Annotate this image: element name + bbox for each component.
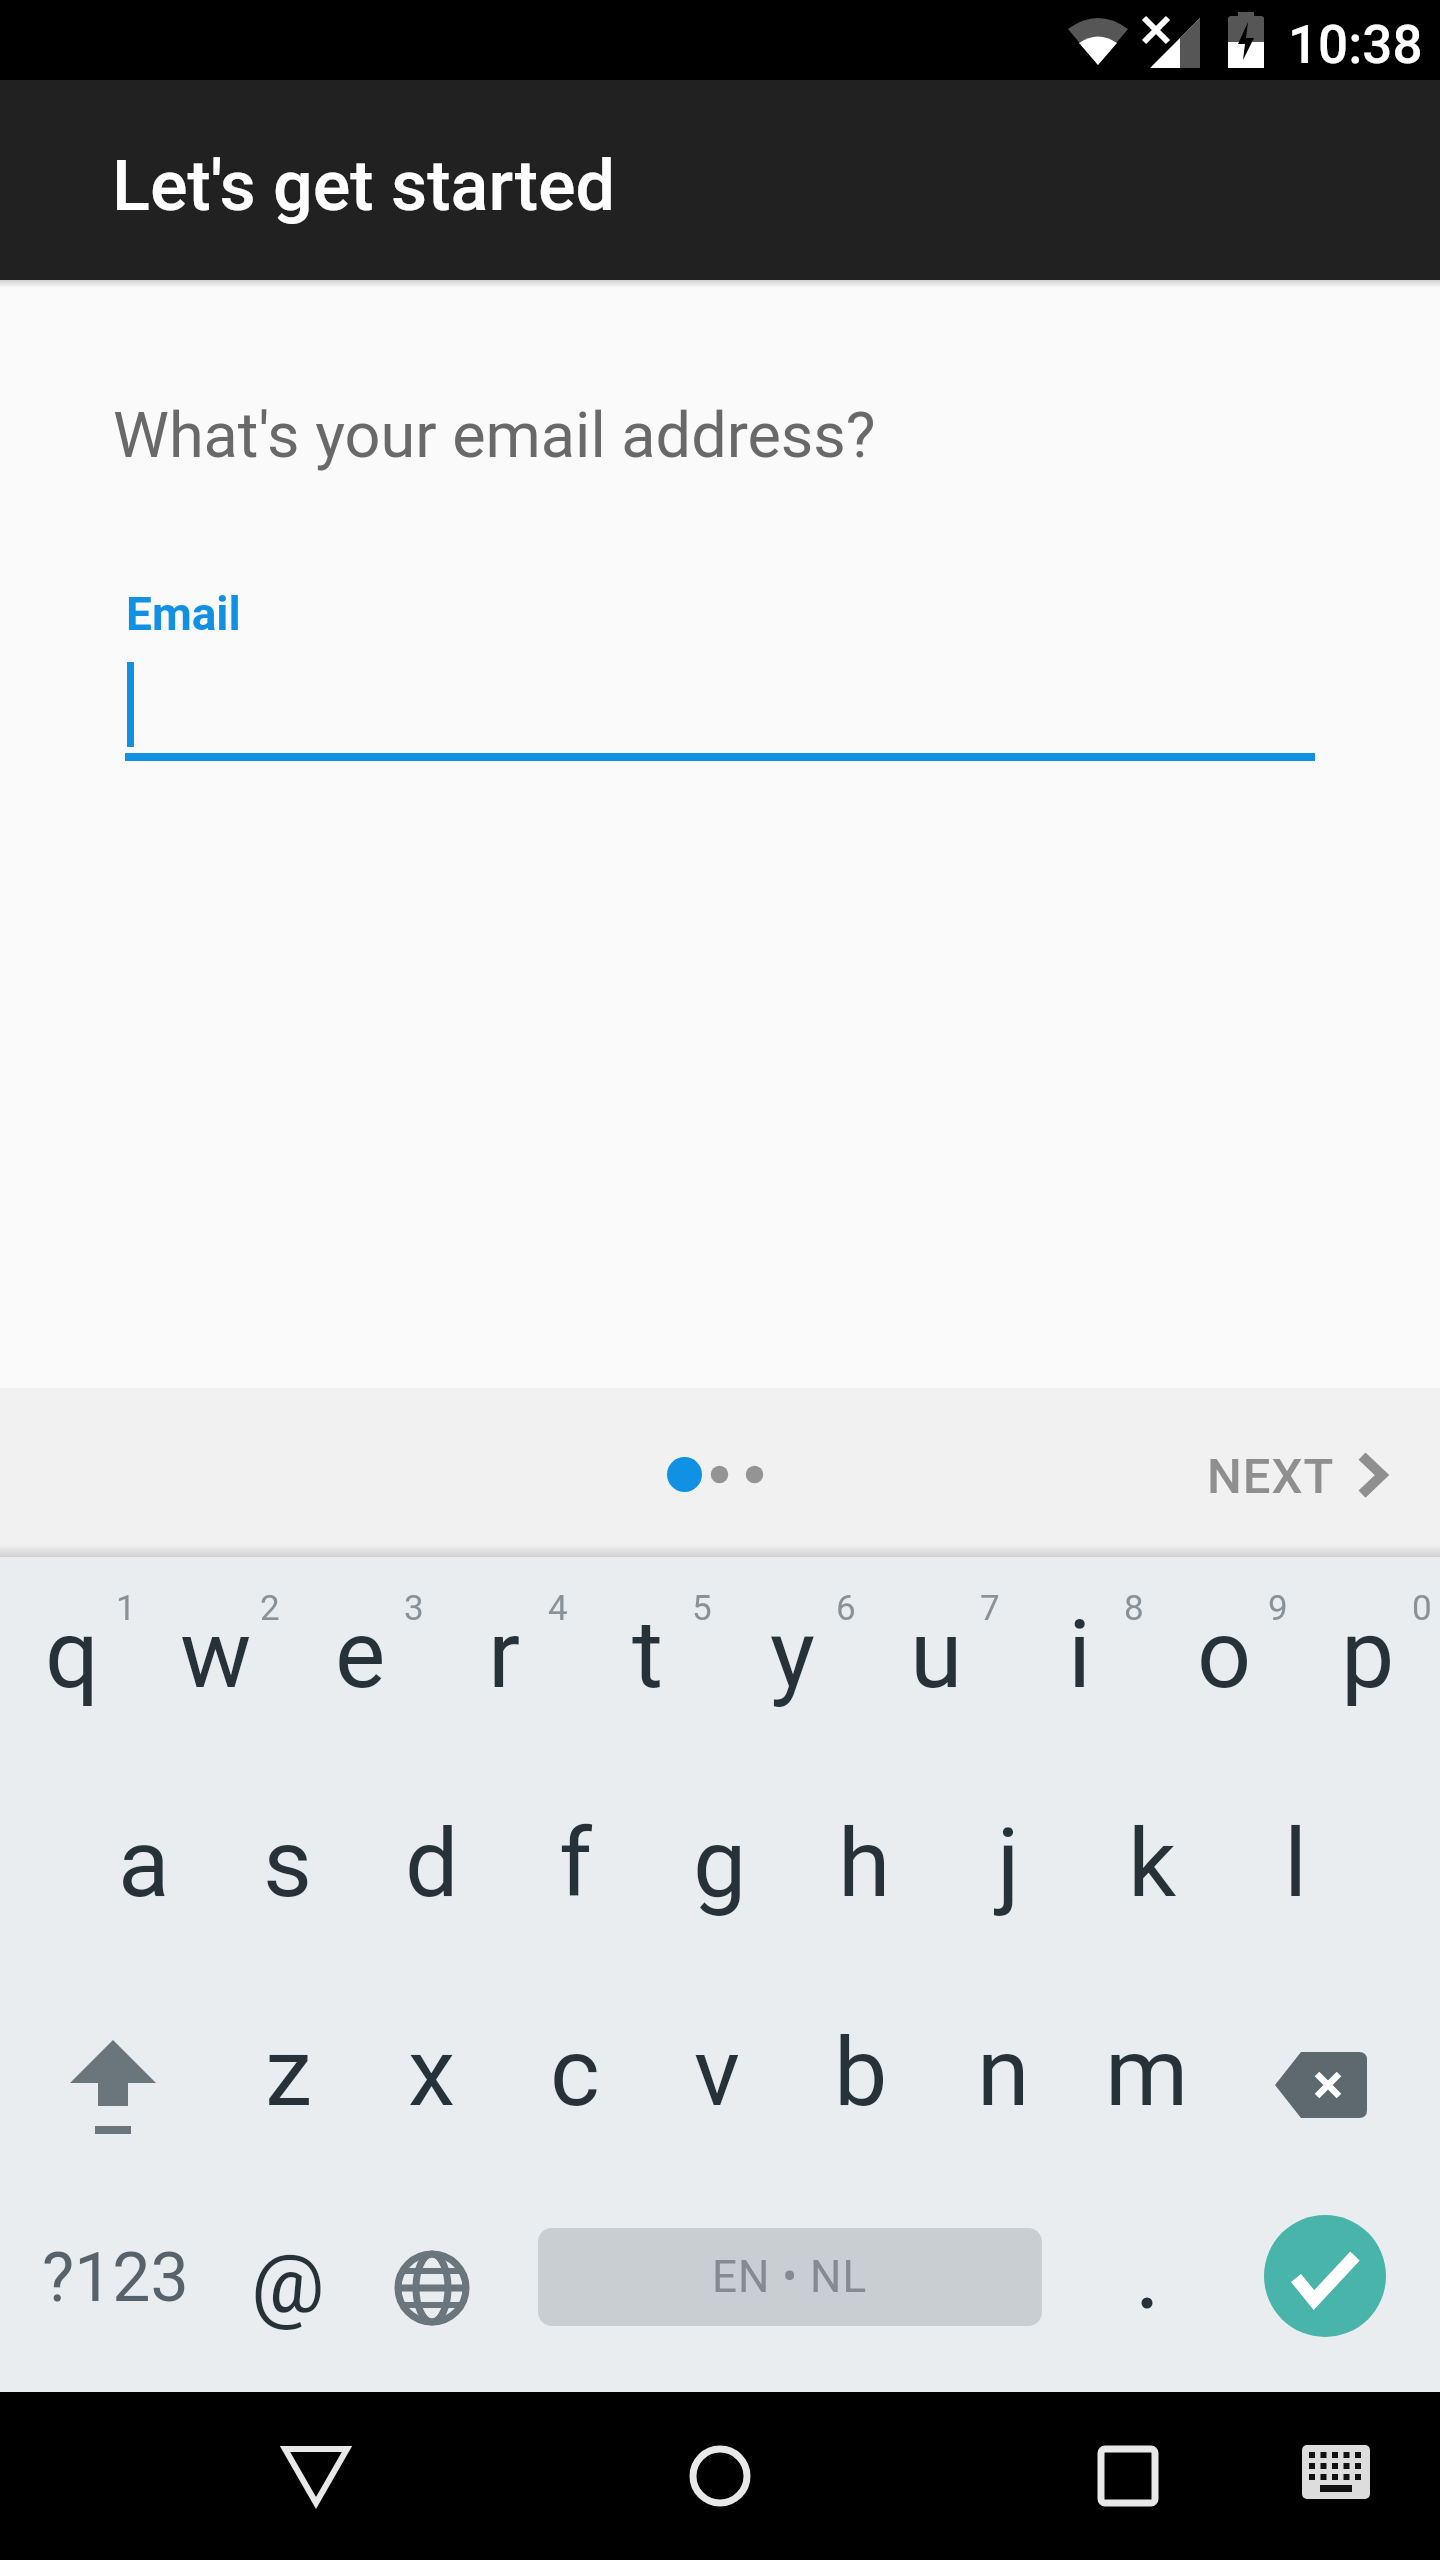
staticText: j (997, 1808, 1020, 1919)
button[interactable]: v (646, 1975, 789, 2184)
staticText: 6 (836, 1588, 856, 1629)
button[interactable]: z (217, 1975, 360, 2184)
button[interactable]: p (1296, 1557, 1440, 1766)
button[interactable] (1296, 2432, 1376, 2512)
staticText: x (408, 2017, 456, 2128)
staticText: s (263, 1808, 313, 1919)
staticText: 2 (260, 1588, 280, 1629)
button[interactable]: t (576, 1557, 720, 1766)
button[interactable]: NEXT (1160, 1418, 1410, 1528)
staticText: b (834, 2017, 888, 2128)
staticText: v (694, 2017, 741, 2128)
staticText: y (770, 1599, 815, 1710)
staticText: c (550, 2017, 600, 2128)
staticText: What's your email address? (113, 399, 876, 473)
button[interactable]: x (360, 1975, 503, 2184)
staticText: n (977, 2017, 1030, 2128)
staticText: p (1341, 1599, 1395, 1710)
staticText: 5 (692, 1588, 712, 1629)
button[interactable]: g (648, 1766, 792, 1975)
button[interactable]: q (0, 1557, 144, 1766)
staticText: Let's get started (112, 145, 616, 227)
button[interactable] (680, 2436, 760, 2516)
button[interactable]: i (1008, 1557, 1152, 1766)
button[interactable]: u (864, 1557, 1008, 1766)
staticText: q (45, 1599, 99, 1710)
staticText: 0 (1412, 1588, 1432, 1629)
staticText: w (180, 1599, 252, 1710)
button[interactable] (1224, 1975, 1440, 2184)
staticText: 8 (1124, 1588, 1144, 1629)
button[interactable]: k (1080, 1766, 1224, 1975)
staticText: r (488, 1599, 521, 1710)
button[interactable]: r (432, 1557, 576, 1766)
button[interactable]: j (936, 1766, 1080, 1975)
staticText: m (1105, 2017, 1189, 2128)
button[interactable]: m (1075, 1975, 1218, 2184)
staticText: g (693, 1808, 747, 1919)
button[interactable] (1088, 2436, 1168, 2516)
staticText: 1 (116, 1588, 136, 1629)
staticText: f (559, 1808, 593, 1919)
staticText: t (632, 1599, 664, 1710)
button[interactable]: @ (216, 2184, 360, 2392)
staticText: k (1128, 1808, 1177, 1919)
button[interactable]: EN • NL (538, 2228, 1042, 2326)
staticText: EN • NL (712, 2251, 868, 2303)
staticText: d (405, 1808, 459, 1919)
staticText: NEXT (1207, 1448, 1335, 1505)
staticText: @ (251, 2236, 325, 2332)
staticText: 3 (404, 1588, 424, 1629)
staticText: 10:38 (1288, 14, 1423, 76)
staticText: h (838, 1808, 891, 1919)
staticText: 9 (1268, 1588, 1288, 1629)
button[interactable]: l (1224, 1766, 1368, 1975)
button[interactable]: o (1152, 1557, 1296, 1766)
button[interactable]: ?123 (0, 2184, 216, 2392)
staticText: 7 (980, 1588, 1000, 1629)
button[interactable]: e (288, 1557, 432, 1766)
staticText: l (1284, 1808, 1308, 1919)
staticText: i (1068, 1599, 1092, 1710)
staticText: e (335, 1599, 386, 1710)
button[interactable]: s (216, 1766, 360, 1975)
button[interactable]: b (789, 1975, 932, 2184)
staticText: z (265, 2017, 313, 2128)
button[interactable]: y (720, 1557, 864, 1766)
button[interactable] (276, 2436, 356, 2516)
button[interactable]: f (504, 1766, 648, 1975)
staticText: a (118, 1808, 170, 1919)
button[interactable]: w (144, 1557, 288, 1766)
button[interactable]: n (932, 1975, 1075, 2184)
staticText: ?123 (42, 2238, 189, 2318)
button[interactable]: h (792, 1766, 936, 1975)
button[interactable]: d (360, 1766, 504, 1975)
button[interactable] (360, 2184, 504, 2392)
staticText: u (910, 1599, 963, 1710)
button[interactable] (0, 1975, 216, 2184)
staticText: o (1197, 1599, 1252, 1710)
staticText: 4 (548, 1588, 568, 1629)
staticText: Email (126, 587, 241, 641)
button[interactable]: c (503, 1975, 646, 2184)
button[interactable]: a (72, 1766, 216, 1975)
button[interactable] (1264, 2215, 1386, 2337)
